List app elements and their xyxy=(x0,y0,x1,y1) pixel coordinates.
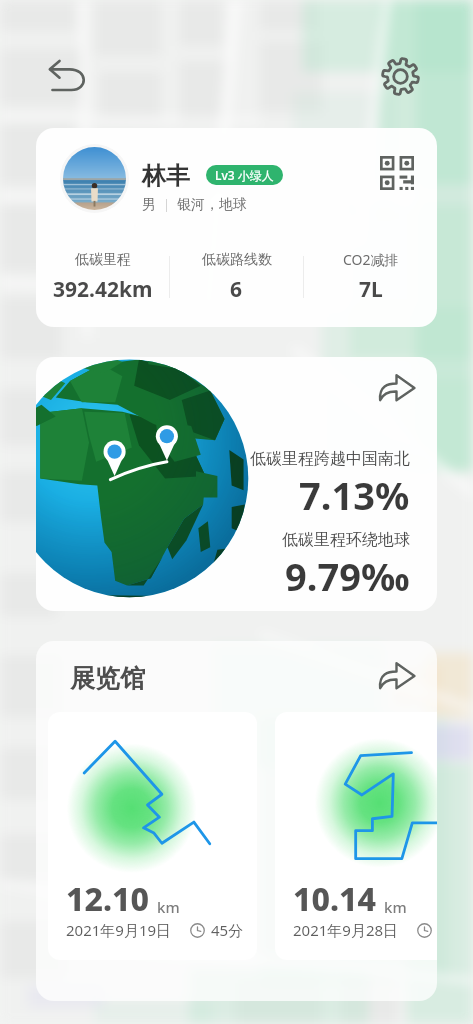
staticText: 7.13% xyxy=(299,469,410,521)
staticText: 低碳路线数 xyxy=(202,251,272,269)
staticText: 6 xyxy=(230,275,243,304)
staticText: 9.79‰ xyxy=(285,550,410,602)
staticText: 林丰 xyxy=(142,161,190,191)
button[interactable]: 10.14 xyxy=(275,712,437,960)
staticText: 2021年9月19日 xyxy=(66,920,172,940)
staticText: 低碳里程 xyxy=(75,251,131,269)
staticText: 45分 xyxy=(211,920,244,940)
button[interactable]: QR code xyxy=(373,149,421,197)
staticText: 12.10 xyxy=(66,877,150,921)
button[interactable]: Settings xyxy=(377,53,423,99)
staticText: 展览馆 xyxy=(70,663,145,694)
staticText: km xyxy=(157,897,180,917)
staticText: 2021年9月28日 xyxy=(293,920,399,940)
button[interactable]: Share exhibits xyxy=(373,652,419,698)
staticText: CO2减排 xyxy=(343,250,399,269)
staticText: Lv3 小绿人 xyxy=(215,167,274,183)
button[interactable]: Back xyxy=(44,56,90,102)
staticText: km xyxy=(384,897,407,917)
staticText: 男 xyxy=(142,196,156,214)
staticText: 7L xyxy=(359,275,383,304)
button[interactable]: Share xyxy=(374,365,418,409)
staticText: 低碳里程跨越中国南北 xyxy=(250,449,410,469)
staticText: 银河，地球 xyxy=(177,196,247,214)
staticText: 10.14 xyxy=(293,877,377,921)
button[interactable]: 12.10 xyxy=(48,712,257,960)
staticText: 392.42km xyxy=(53,275,153,304)
staticText: 低碳里程环绕地球 xyxy=(282,530,410,550)
